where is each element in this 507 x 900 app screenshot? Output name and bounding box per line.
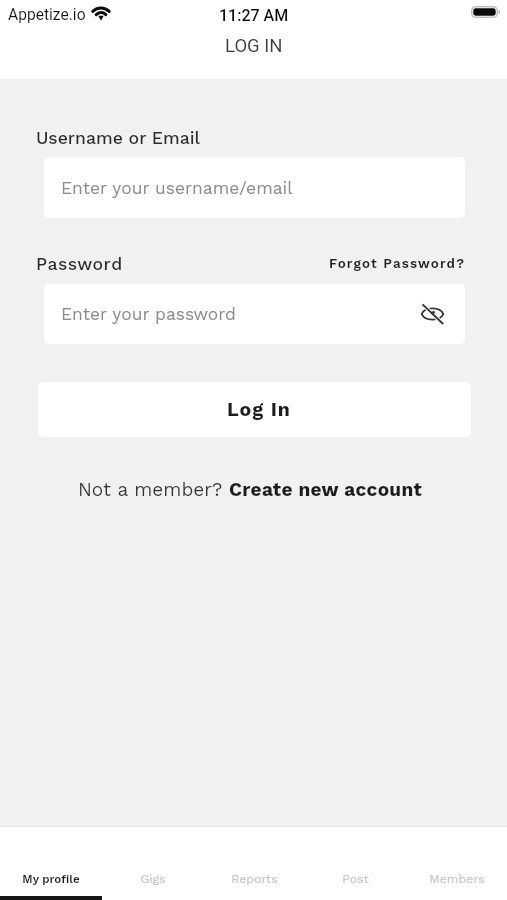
staticText: Appetize.io [8,6,86,24]
button[interactable]: Gigs [102,826,204,900]
staticText: Gigs [140,872,166,886]
staticText: Members [429,872,485,886]
button[interactable]: Post [305,826,406,900]
button[interactable]: Members [406,826,507,900]
staticText: Password [36,254,123,275]
button[interactable]: Enter your password [44,284,465,344]
staticText: Reports [231,872,278,886]
staticText: Post [342,872,369,886]
staticText: Username or Email [36,128,201,149]
button[interactable]: Reports [204,826,305,900]
staticText: Create new account [229,478,423,500]
button[interactable]: Log In [38,382,471,437]
staticText: Not a member? [78,478,229,500]
button[interactable]: Show password [415,297,449,331]
button[interactable]: My profile [0,826,102,900]
button[interactable]: Enter your username/email [44,157,465,218]
staticText: Log In [227,398,291,421]
staticText: 11:27 AM [219,6,289,25]
staticText: Enter your username/email [61,178,293,198]
button[interactable]: Forgot Password? [329,256,466,272]
staticText: Forgot Password? [329,256,466,272]
staticText: Enter your password [61,304,236,324]
staticText: My profile [22,872,80,886]
button[interactable]: Create new account [229,478,423,500]
staticText: LOG IN [225,35,283,57]
